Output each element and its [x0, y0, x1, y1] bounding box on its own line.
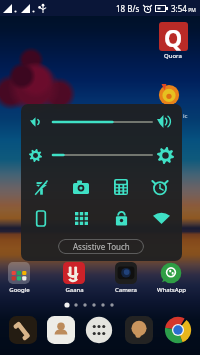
- button[interactable]: Q: [157, 22, 189, 60]
- button[interactable]: Chrome: [164, 316, 192, 344]
- staticText: ic: [183, 112, 188, 120]
- button[interactable]: Device: [27, 205, 55, 231]
- staticText: Assistive Touch: [73, 241, 130, 252]
- button[interactable]: Phone: [9, 316, 37, 344]
- staticText: Gaana: [65, 286, 84, 294]
- staticText: Q: [164, 22, 183, 51]
- button[interactable]: Gallery: [125, 316, 153, 344]
- button[interactable]: Assistive Touch: [58, 239, 144, 254]
- button[interactable]: Google: [0, 262, 42, 294]
- button[interactable]: Music app: [158, 84, 180, 106]
- button[interactable]: Camera: [103, 262, 149, 294]
- button[interactable]: Mute: [24, 111, 46, 132]
- button[interactable]: Contacts: [47, 316, 75, 344]
- button[interactable]: Apps: [67, 205, 95, 231]
- button[interactable]: All apps: [85, 316, 113, 344]
- staticText: Quora: [164, 52, 182, 60]
- staticText: PM: [187, 7, 196, 14]
- button[interactable]: Calculator: [107, 174, 135, 200]
- button[interactable]: Volume up: [153, 111, 175, 132]
- button[interactable]: Dim: [24, 144, 46, 166]
- staticText: Google: [9, 286, 30, 294]
- button[interactable]: Alarm: [146, 174, 174, 200]
- button[interactable]: Lock: [107, 205, 135, 231]
- button[interactable]: Wi-Fi: [147, 205, 175, 231]
- button[interactable]: Flashlight off: [27, 174, 55, 200]
- button[interactable]: Camera: [67, 174, 95, 200]
- staticText: Camera: [115, 286, 137, 294]
- staticText: WhatsApp: [157, 286, 186, 294]
- button[interactable]: WhatsApp: [148, 262, 194, 294]
- staticText: 3:54: [171, 3, 187, 14]
- button[interactable]: Brighten: [154, 144, 176, 166]
- button[interactable]: Gaana: [51, 262, 97, 294]
- staticText: 18 B/s: [116, 3, 140, 14]
